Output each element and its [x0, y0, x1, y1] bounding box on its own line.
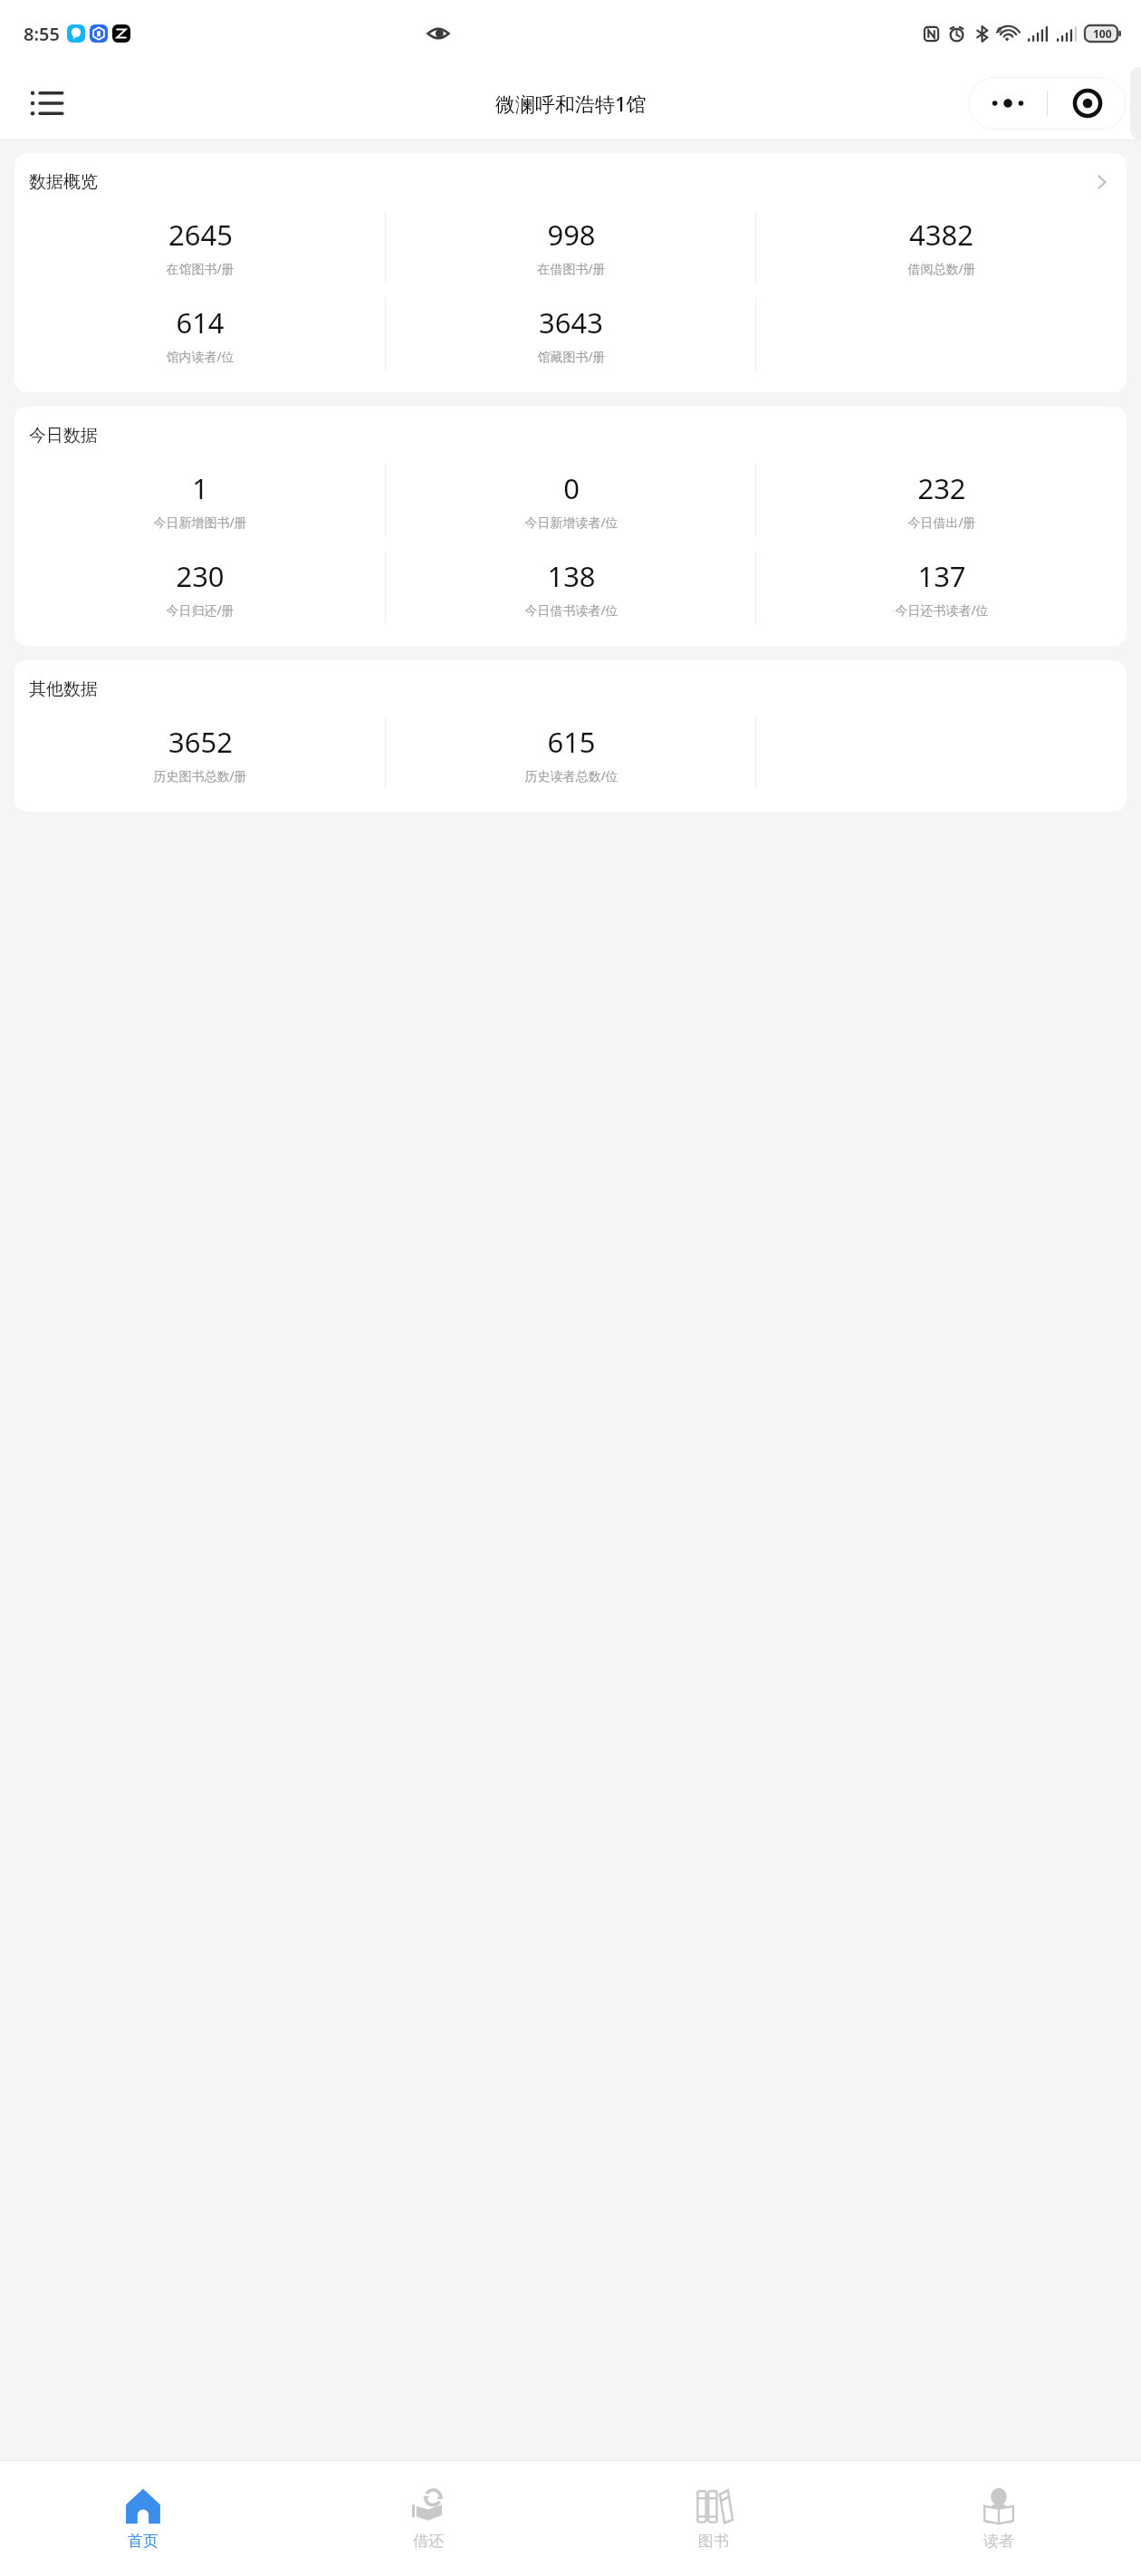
- staticText: 137: [917, 557, 966, 595]
- staticText: 1: [192, 469, 208, 507]
- staticText: 馆藏图书/册: [537, 348, 606, 365]
- staticText: 借阅总数/册: [907, 260, 976, 277]
- staticText: 借还: [413, 2532, 444, 2551]
- staticText: 100: [1093, 26, 1112, 41]
- staticText: 图书: [698, 2532, 729, 2551]
- staticText: 首页: [128, 2532, 158, 2551]
- button[interactable]: 菜单: [24, 80, 71, 127]
- staticText: 998: [547, 216, 596, 254]
- staticText: 在借图书/册: [537, 260, 606, 277]
- staticText: 在馆图书/册: [166, 260, 235, 277]
- staticText: 馆内读者/位: [166, 348, 235, 365]
- staticText: 今日借出/册: [907, 514, 976, 531]
- button[interactable]: 其他数据: [14, 660, 1127, 812]
- button[interactable]: 图书: [570, 2461, 856, 2576]
- staticText: 8:55: [24, 22, 60, 46]
- staticText: 今日借书读者/位: [524, 601, 618, 619]
- staticText: 今日还书读者/位: [895, 601, 989, 619]
- button[interactable]: 今日数据: [14, 407, 1127, 646]
- staticText: 3652: [168, 723, 233, 761]
- staticText: 230: [176, 557, 225, 595]
- staticText: 138: [547, 557, 596, 595]
- staticText: 数据概览: [29, 171, 98, 193]
- staticText: 今日归还/册: [166, 601, 235, 619]
- button[interactable]: 更多: [968, 77, 1047, 130]
- button[interactable]: 读者: [856, 2461, 1141, 2576]
- staticText: 232: [917, 469, 966, 507]
- staticText: 4382: [909, 216, 973, 254]
- staticText: 微澜呼和浩特1馆: [495, 90, 647, 117]
- button[interactable]: 首页: [0, 2461, 285, 2576]
- button[interactable]: 借还: [285, 2461, 570, 2576]
- staticText: 614: [176, 303, 225, 341]
- staticText: 今日新增读者/位: [524, 514, 618, 531]
- staticText: 3643: [539, 303, 603, 341]
- staticText: 历史读者总数/位: [524, 767, 618, 784]
- staticText: 0: [563, 469, 580, 507]
- staticText: 其他数据: [29, 678, 98, 700]
- button[interactable]: 胶囊: [1048, 77, 1127, 130]
- staticText: 6: [997, 24, 1002, 34]
- staticText: 今日新增图书/册: [153, 514, 247, 531]
- staticText: 今日数据: [29, 425, 98, 447]
- staticText: 历史图书总数/册: [153, 767, 247, 784]
- staticText: 615: [547, 723, 596, 761]
- staticText: 读者: [983, 2532, 1014, 2551]
- staticText: 2645: [168, 216, 233, 254]
- button[interactable]: 数据概览: [14, 153, 1127, 392]
